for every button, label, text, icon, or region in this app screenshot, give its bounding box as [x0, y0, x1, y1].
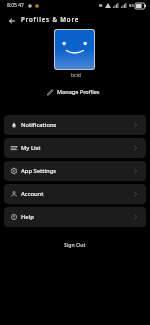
- staticText: 8:05 47: [7, 2, 24, 9]
- button[interactable]: Manage Profiles: [42, 86, 105, 97]
- staticText: Help: [21, 213, 34, 221]
- button[interactable]: Sign Out: [48, 238, 102, 251]
- button[interactable]: Back: [5, 14, 19, 28]
- staticText: Sign Out: [64, 241, 86, 248]
- staticText: App Settings: [21, 167, 57, 175]
- staticText: 85: [129, 3, 134, 9]
- button[interactable]: App Settings: [4, 161, 146, 181]
- button[interactable]: Help: [4, 207, 146, 227]
- button[interactable]: Profile avatar: [55, 30, 94, 69]
- staticText: Account: [21, 190, 44, 198]
- button[interactable]: Notifications: [4, 115, 146, 135]
- button[interactable]: Account: [4, 184, 146, 204]
- staticText: bcid: [71, 72, 81, 79]
- staticText: Profiles & More: [21, 15, 80, 23]
- staticText: Notifications: [21, 121, 57, 129]
- staticText: My List: [21, 144, 41, 152]
- button[interactable]: My List: [4, 138, 146, 158]
- staticText: Manage Profiles: [57, 88, 100, 95]
